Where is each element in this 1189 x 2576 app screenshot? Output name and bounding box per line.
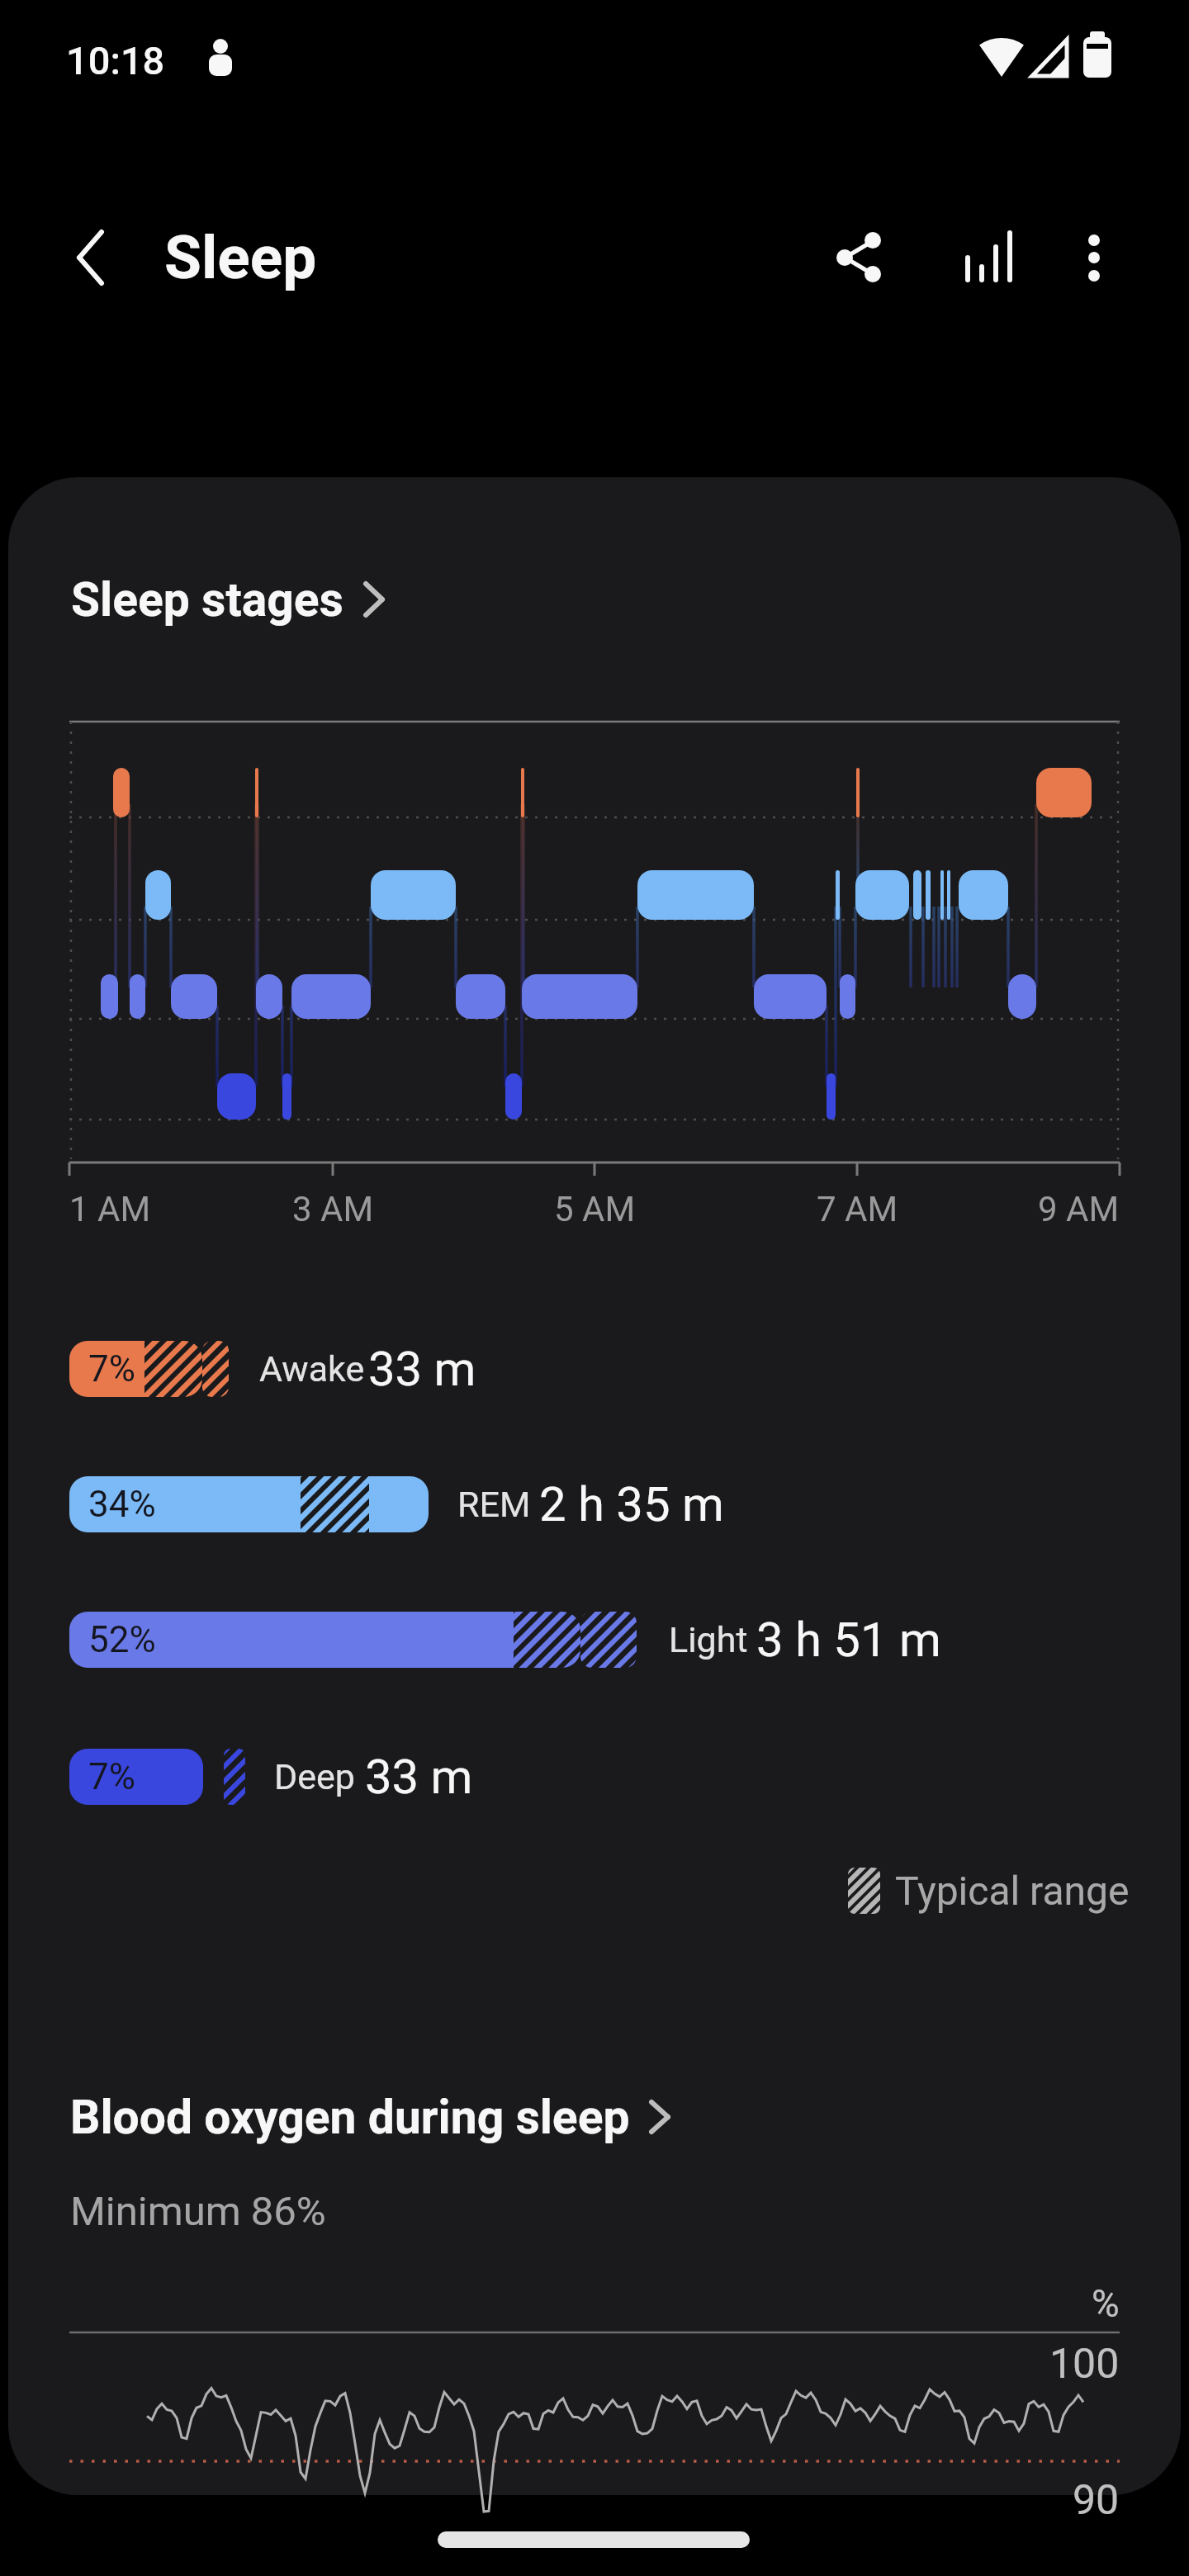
staticText: 34% — [88, 1483, 156, 1526]
staticText: 7 AM — [817, 1189, 898, 1229]
staticText: Typical range — [895, 1868, 1130, 1914]
button[interactable] — [40, 208, 139, 307]
staticText: 33 m — [365, 1749, 473, 1805]
button[interactable] — [50, 2072, 694, 2163]
staticText: 7% — [88, 1755, 135, 1798]
staticText: 90 — [1073, 2476, 1120, 2525]
staticText: Light — [669, 1619, 748, 1660]
button[interactable] — [809, 208, 900, 307]
staticText: 100 — [1049, 2340, 1120, 2389]
staticText: 5 AM — [554, 1189, 636, 1229]
button[interactable] — [50, 555, 405, 646]
staticText: 52% — [88, 1618, 156, 1661]
staticText: 1 AM — [69, 1189, 151, 1229]
staticText: 7% — [88, 1347, 135, 1390]
button[interactable] — [1057, 208, 1148, 307]
staticText: 3 h 51 m — [756, 1612, 941, 1668]
staticText: 2 h 35 m — [539, 1476, 724, 1532]
staticText: 33 m — [368, 1341, 476, 1397]
staticText: Sleep — [164, 222, 317, 293]
staticText: REM — [457, 1484, 531, 1525]
staticText: % — [1092, 2281, 1120, 2326]
staticText: 9 AM — [1038, 1189, 1120, 1229]
staticText: Deep — [274, 1756, 355, 1797]
staticText: Blood oxygen during sleep — [70, 2090, 630, 2145]
staticText: 10:18 — [66, 38, 165, 83]
staticText: Sleep stages — [71, 572, 343, 627]
staticText: Awake — [259, 1348, 365, 1390]
button[interactable] — [941, 208, 1032, 307]
staticText: Minimum 86% — [70, 2188, 326, 2235]
staticText: 3 AM — [292, 1189, 374, 1229]
